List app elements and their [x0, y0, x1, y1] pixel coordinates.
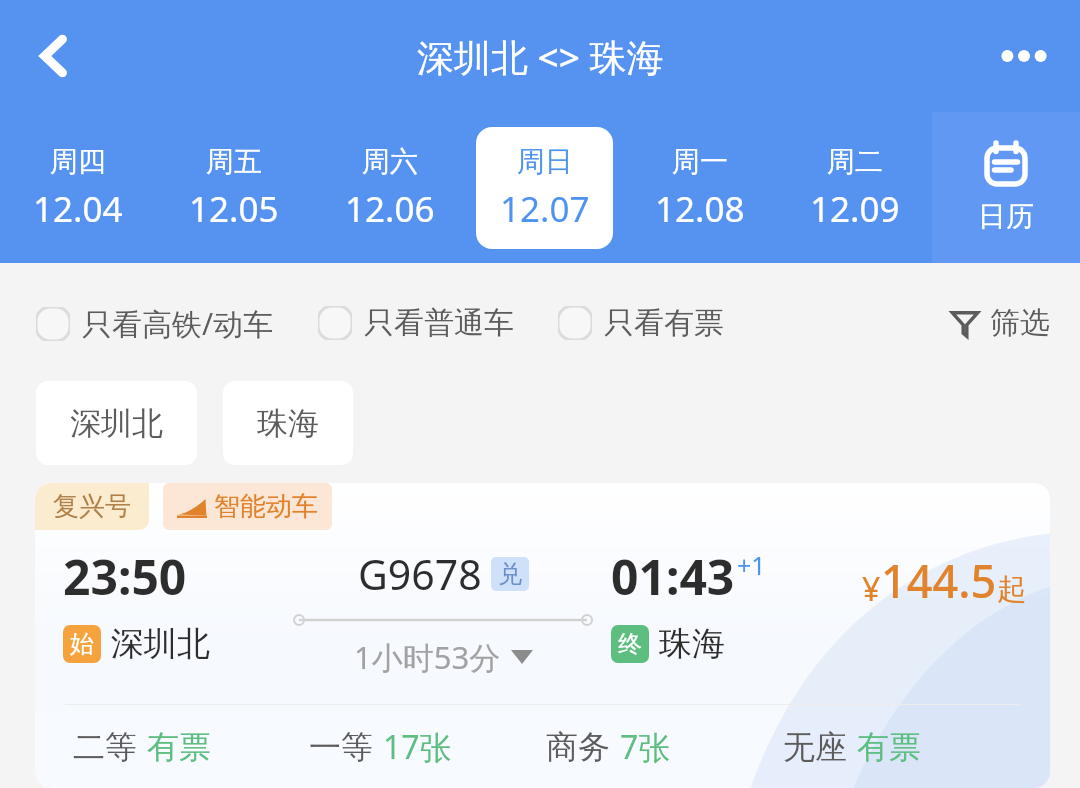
staticText: 周一 — [672, 144, 728, 179]
staticText: 只看普通车 — [364, 304, 514, 342]
staticText: 只看有票 — [604, 304, 724, 342]
button[interactable]: 周四 — [9, 127, 147, 249]
staticText: 17张 — [383, 725, 452, 769]
button[interactable]: 筛选 — [950, 304, 1050, 342]
button[interactable]: 只看高铁/动车 — [36, 303, 274, 344]
staticText: 01:43 — [611, 544, 735, 609]
staticText: 有票 — [147, 727, 211, 767]
button[interactable]: 周五 — [165, 127, 303, 249]
button[interactable]: 只看有票 — [558, 304, 724, 342]
staticText: 23:50 — [63, 544, 187, 609]
button[interactable]: 周一 — [631, 127, 768, 249]
staticText: 珠海 — [659, 623, 725, 665]
button[interactable]: Back — [12, 14, 96, 98]
staticText: 复兴号 — [53, 490, 131, 523]
staticText: 周六 — [362, 144, 418, 179]
staticText: 深圳北 <> 珠海 — [417, 31, 664, 82]
staticText: 起 — [997, 571, 1026, 608]
staticText: 12.04 — [33, 185, 123, 233]
staticText: 日历 — [978, 199, 1034, 234]
staticText: 兑 — [498, 559, 522, 589]
button[interactable]: 周六 — [321, 127, 458, 249]
staticText: 商务 — [546, 727, 610, 767]
staticText: G9678 — [358, 546, 482, 602]
staticText: 1小时53分 — [354, 636, 501, 678]
staticText: 智能动车 — [214, 490, 318, 523]
button[interactable]: 只看普通车 — [318, 304, 514, 342]
staticText: 一等 — [309, 727, 373, 767]
staticText: 7张 — [620, 725, 671, 769]
button[interactable]: More options — [982, 14, 1066, 98]
button[interactable]: 周二 — [786, 127, 923, 249]
staticText: 深圳北 — [70, 404, 163, 443]
staticText: 周二 — [827, 144, 883, 179]
staticText: 12.09 — [810, 185, 900, 233]
staticText: 珠海 — [257, 404, 319, 443]
staticText: ¥ — [862, 567, 881, 611]
staticText: 周日 — [517, 144, 573, 179]
button[interactable]: 珠海 — [223, 381, 353, 465]
staticText: 有票 — [857, 727, 921, 767]
staticText: 12.05 — [189, 185, 279, 233]
staticText: +1 — [737, 548, 766, 582]
staticText: 筛选 — [990, 304, 1050, 342]
button[interactable]: 日历 — [932, 112, 1080, 263]
staticText: 始 — [70, 629, 94, 659]
staticText: 12.07 — [500, 185, 590, 233]
staticText: 终 — [618, 629, 642, 659]
staticText: 周五 — [206, 144, 262, 179]
button[interactable]: 复兴号 — [35, 483, 1050, 788]
button[interactable]: 周日 — [476, 127, 613, 249]
staticText: 二等 — [73, 727, 137, 767]
staticText: 12.06 — [345, 185, 435, 233]
staticText: 周四 — [50, 144, 106, 179]
button[interactable]: 深圳北 — [36, 381, 197, 465]
staticText: 深圳北 — [111, 623, 210, 665]
staticText: 无座 — [783, 727, 847, 767]
staticText: 12.08 — [655, 185, 745, 233]
staticText: 只看高铁/动车 — [82, 303, 274, 344]
staticText: 144.5 — [881, 550, 997, 611]
